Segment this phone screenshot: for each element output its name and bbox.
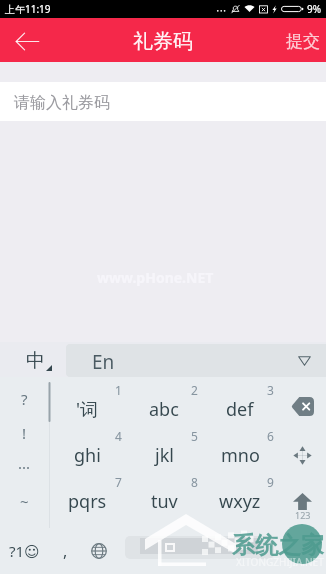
button[interactable]: 5 bbox=[126, 430, 202, 476]
button[interactable]: ! bbox=[0, 416, 49, 450]
button[interactable]: Move cursor bbox=[278, 431, 326, 480]
button[interactable]: ··· bbox=[0, 450, 49, 484]
button[interactable]: ?1☺ bbox=[0, 528, 49, 574]
staticText: def bbox=[226, 397, 254, 422]
staticText: www.pHone.NET bbox=[97, 268, 214, 287]
button[interactable]: 8 bbox=[126, 476, 202, 522]
staticText: 3 bbox=[267, 382, 274, 398]
staticText: '词 bbox=[76, 397, 99, 422]
staticText: En bbox=[92, 349, 115, 375]
staticText: 123 bbox=[295, 509, 311, 521]
button[interactable]: 中 bbox=[0, 342, 66, 377]
staticText: 7 bbox=[115, 474, 122, 490]
button[interactable]: Space bbox=[125, 536, 274, 559]
staticText: ··· bbox=[18, 457, 31, 477]
button[interactable]: Hide keyboard bbox=[294, 351, 314, 371]
staticText: 提交 bbox=[286, 31, 320, 52]
staticText: ghi bbox=[74, 443, 101, 468]
staticText: jkl bbox=[155, 443, 174, 468]
button[interactable]: Switch language bbox=[82, 528, 125, 574]
button[interactable]: 4 bbox=[49, 430, 126, 476]
staticText: 8 bbox=[191, 474, 198, 490]
staticText: XITONGZHIJIA.NET bbox=[236, 555, 324, 569]
button[interactable]: En bbox=[66, 344, 326, 377]
button[interactable]: 2 bbox=[126, 384, 202, 430]
button[interactable]: 3 bbox=[202, 384, 278, 430]
staticText: 2 bbox=[191, 382, 198, 398]
button[interactable]: 7 bbox=[49, 476, 126, 522]
button[interactable]: 请输入礼券码 bbox=[0, 82, 326, 121]
staticText: 4 bbox=[115, 428, 122, 444]
staticText: 6 bbox=[267, 428, 274, 444]
staticText: 中 bbox=[26, 349, 45, 373]
button[interactable]: 1 bbox=[49, 384, 126, 430]
button[interactable]: ? bbox=[0, 382, 49, 416]
staticText: pqrs bbox=[68, 489, 107, 514]
button[interactable]: Shift bbox=[278, 480, 326, 528]
staticText: 1 bbox=[115, 382, 122, 398]
staticText: 系统之家 bbox=[232, 531, 324, 560]
staticText: 请输入礼券码 bbox=[14, 93, 110, 113]
button[interactable]: Back bbox=[0, 18, 52, 62]
staticText: 礼券码 bbox=[133, 29, 193, 54]
staticText: tuv bbox=[151, 489, 178, 514]
button[interactable]: Backspace bbox=[278, 382, 326, 431]
staticText: mno bbox=[221, 443, 260, 468]
button[interactable]: , bbox=[49, 528, 82, 574]
staticText: , bbox=[63, 540, 68, 562]
staticText: ! bbox=[22, 423, 27, 443]
staticText: 5 bbox=[191, 428, 198, 444]
staticText: ? bbox=[21, 389, 28, 409]
button[interactable]: 9 bbox=[202, 476, 278, 522]
button[interactable]: 提交 bbox=[276, 18, 326, 62]
staticText: 上午11:19 bbox=[5, 2, 51, 16]
staticText: ?1☺ bbox=[9, 541, 40, 561]
staticText: ~ bbox=[20, 491, 29, 511]
staticText: abc bbox=[149, 397, 179, 422]
button[interactable]: ~ bbox=[0, 484, 49, 518]
button[interactable]: 6 bbox=[202, 430, 278, 476]
staticText: 9 bbox=[267, 474, 274, 490]
staticText: 9% bbox=[307, 2, 322, 16]
button[interactable]: Enter bbox=[278, 528, 326, 574]
staticText: wxyz bbox=[219, 489, 261, 514]
